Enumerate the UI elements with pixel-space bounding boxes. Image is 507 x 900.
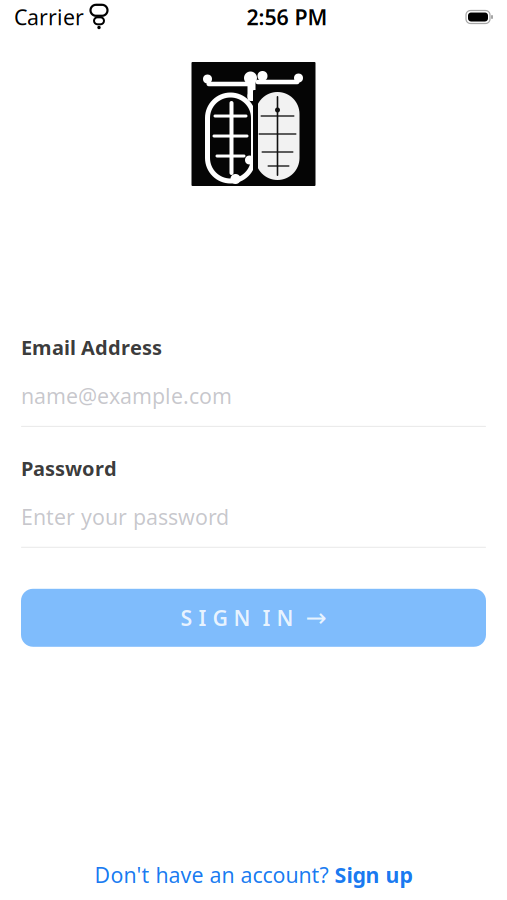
staticText: name@example.com bbox=[21, 382, 232, 410]
staticText: S I G N I N bbox=[180, 604, 293, 632]
staticText: Carrier bbox=[14, 3, 84, 31]
staticText: Password bbox=[21, 455, 117, 481]
button[interactable]: name@example.com bbox=[21, 382, 486, 427]
button[interactable]: Don't have an account? bbox=[80, 855, 426, 895]
button[interactable]: S I G N I N bbox=[21, 589, 486, 647]
staticText: 2:56 PM bbox=[246, 3, 327, 31]
staticText: Sign up bbox=[334, 861, 412, 889]
button[interactable]: Enter your password bbox=[21, 502, 486, 548]
staticText: Enter your password bbox=[21, 502, 229, 531]
staticText: → bbox=[305, 603, 326, 632]
staticText: Email Address bbox=[21, 334, 162, 361]
staticText: Don't have an account? bbox=[94, 861, 334, 889]
